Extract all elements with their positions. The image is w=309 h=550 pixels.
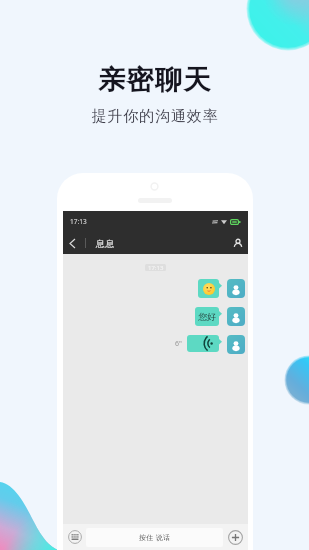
staticText: 提升你的沟通效率: [91, 107, 219, 126]
staticText: 17:13: [148, 264, 164, 271]
button[interactable]: Avatar: [227, 307, 245, 326]
button[interactable]: Avatar: [227, 335, 245, 354]
button[interactable]: More: [225, 527, 245, 547]
button[interactable]: 按住 说话: [86, 528, 223, 547]
staticText: 息息: [96, 238, 115, 249]
button[interactable]: Back: [66, 234, 79, 252]
staticText: 您好: [198, 311, 216, 322]
button[interactable]: Message: [195, 307, 219, 326]
staticText: 按住 说话: [139, 533, 171, 543]
button[interactable]: Avatar: [227, 279, 245, 298]
staticText: 6": [175, 339, 182, 349]
button[interactable]: Message: [198, 279, 219, 298]
staticText: 亲密聊天: [98, 63, 212, 97]
staticText: 17:13: [70, 217, 87, 226]
button[interactable]: Profile: [230, 235, 245, 251]
button[interactable]: Voice message: [187, 335, 219, 352]
button[interactable]: Keyboard: [66, 528, 84, 546]
